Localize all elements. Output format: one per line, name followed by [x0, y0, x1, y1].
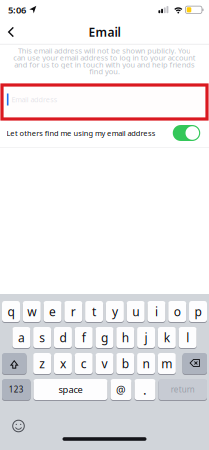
button[interactable]: Delete	[182, 352, 207, 374]
button[interactable]: u	[127, 300, 145, 322]
staticText: .	[143, 381, 147, 398]
button[interactable]: n	[137, 352, 155, 374]
staticText: c	[81, 355, 87, 371]
staticText: y	[112, 303, 118, 319]
button[interactable]: l	[179, 326, 197, 348]
button[interactable]: v	[95, 352, 113, 374]
button[interactable]: m	[158, 352, 176, 374]
button[interactable]: k	[158, 326, 176, 348]
staticText: p	[194, 303, 201, 319]
staticText: can use your email address to log in to …	[6, 52, 202, 63]
staticText: q	[7, 303, 14, 319]
button[interactable]: 123	[2, 378, 30, 400]
button[interactable]: r	[64, 300, 82, 322]
staticText: a	[18, 329, 25, 345]
button[interactable]: a	[12, 326, 30, 348]
staticText: Email address	[9, 94, 60, 105]
button[interactable]: Shift	[2, 352, 26, 374]
staticText: Email	[88, 24, 120, 40]
staticText: t	[92, 303, 96, 319]
button[interactable]: j	[137, 326, 155, 348]
button[interactable]: @	[110, 378, 131, 400]
staticText: n	[143, 355, 150, 371]
staticText: return	[171, 384, 195, 395]
staticText: e	[49, 303, 56, 319]
button[interactable]: w	[23, 300, 41, 322]
staticText: v	[101, 355, 107, 371]
staticText: j	[145, 329, 148, 345]
button[interactable]: Emoji	[12, 419, 25, 432]
button[interactable]: Email address	[4, 87, 204, 117]
button[interactable]: h	[116, 326, 134, 348]
button[interactable]: Back	[4, 25, 18, 39]
staticText: and for us to get in touch with you and …	[7, 59, 201, 70]
staticText: s	[39, 329, 45, 345]
staticText: i	[155, 303, 158, 319]
button[interactable]: .	[134, 378, 155, 400]
button[interactable]: f	[75, 326, 93, 348]
staticText: z	[39, 355, 45, 371]
button[interactable]: Let others find me using my email addres…	[173, 125, 200, 141]
staticText: u	[132, 303, 139, 319]
staticText: f	[82, 329, 86, 345]
button[interactable]: p	[189, 300, 207, 322]
button[interactable]: c	[75, 352, 93, 374]
button[interactable]: return	[158, 378, 207, 400]
button[interactable]: x	[54, 352, 72, 374]
staticText: This email address will not be shown pub…	[11, 45, 197, 56]
button[interactable]: o	[168, 300, 186, 322]
button[interactable]: i	[147, 300, 165, 322]
button[interactable]: z	[33, 352, 51, 374]
button[interactable]: b	[116, 352, 134, 374]
button[interactable]: space	[33, 378, 107, 400]
staticText: 123	[9, 384, 24, 395]
button[interactable]: g	[95, 326, 113, 348]
staticText: Let others find me using my email addres…	[1, 128, 161, 138]
staticText: g	[101, 329, 108, 345]
staticText: x	[60, 355, 66, 371]
button[interactable]: q	[2, 300, 20, 322]
staticText: b	[122, 355, 129, 371]
staticText: w	[27, 303, 36, 319]
staticText: r	[71, 303, 76, 319]
staticText: @	[116, 382, 126, 397]
staticText: l	[186, 329, 189, 345]
staticText: o	[174, 303, 181, 319]
staticText: space	[58, 383, 82, 396]
staticText: find you.	[88, 66, 121, 77]
staticText: m	[161, 355, 172, 371]
button[interactable]: d	[54, 326, 72, 348]
button[interactable]: e	[44, 300, 62, 322]
button[interactable]: t	[85, 300, 103, 322]
staticText: h	[122, 329, 129, 345]
staticText: 5:06	[8, 4, 26, 16]
button[interactable]: s	[33, 326, 51, 348]
staticText: d	[59, 329, 66, 345]
staticText: k	[164, 329, 170, 345]
button[interactable]: y	[106, 300, 124, 322]
